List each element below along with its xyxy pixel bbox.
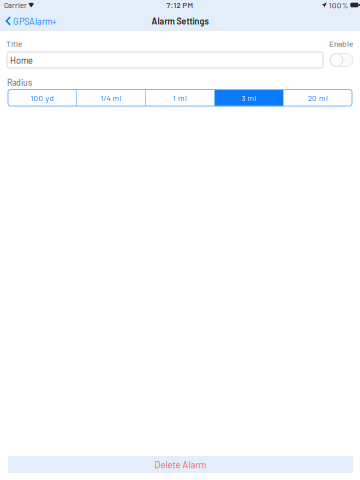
staticText: Carrier (4, 0, 27, 9)
staticText: 1 mi (173, 93, 187, 103)
staticText: Delete Alarm (154, 459, 206, 470)
button[interactable]: GPSAlarm+ (0, 12, 61, 30)
button[interactable]: 3 mi (215, 90, 283, 106)
staticText: 20 mi (308, 93, 328, 103)
staticText: Title (6, 39, 22, 48)
button[interactable]: Enable (330, 53, 353, 66)
staticText: GPSAlarm+ (13, 16, 57, 26)
staticText: Enable (329, 39, 353, 48)
button[interactable]: Home (7, 52, 323, 68)
button[interactable]: 20 mi (284, 90, 352, 106)
staticText: Home (10, 55, 33, 65)
button[interactable]: 1/4 mi (77, 90, 145, 106)
button[interactable]: Delete Alarm (8, 456, 353, 473)
staticText: 1/4 mi (100, 93, 121, 103)
staticText: Alarm Settings (151, 16, 208, 26)
staticText: 100% (329, 0, 349, 10)
staticText: 100 yd (31, 93, 54, 103)
staticText: Radius (7, 77, 32, 88)
button[interactable]: 100 yd (8, 90, 76, 106)
staticText: 3 mi (241, 93, 256, 103)
button[interactable]: 1 mi (146, 90, 214, 106)
staticText: 7:12 PM (166, 0, 193, 10)
